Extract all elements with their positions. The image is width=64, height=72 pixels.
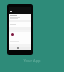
staticText: Your App xyxy=(0,58,64,63)
